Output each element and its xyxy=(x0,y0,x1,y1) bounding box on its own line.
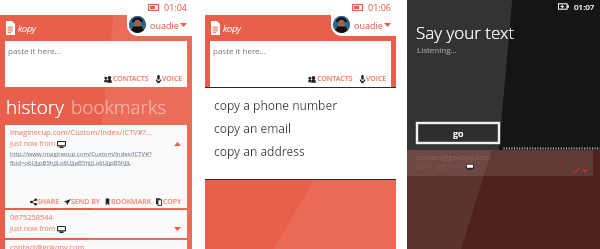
staticText: kopy xyxy=(223,22,241,34)
staticText: VOICE xyxy=(366,74,387,84)
button[interactable]: SHARE xyxy=(30,197,60,207)
staticText: ouadie xyxy=(150,19,179,31)
staticText: 01:04 xyxy=(164,1,187,13)
staticText: CONTACTS xyxy=(317,74,353,84)
staticText: VOICE xyxy=(162,74,183,84)
button[interactable]: ouadie xyxy=(331,13,396,36)
staticText: Listening... xyxy=(417,44,457,55)
staticText: CONTACTS xyxy=(113,74,149,84)
button[interactable]: 0675258544 xyxy=(5,210,187,238)
staticText: 01:06 xyxy=(368,1,391,13)
staticText: paste it here... xyxy=(8,45,61,56)
button[interactable]: imaginecup.com/Custom/Index/ICTV#?... xyxy=(5,125,187,208)
staticText: just now from xyxy=(10,139,56,149)
other: Account menu xyxy=(180,23,187,27)
staticText: 01:07 xyxy=(574,1,595,12)
button[interactable]: go xyxy=(417,123,499,143)
staticText: copy an address xyxy=(214,143,305,159)
button[interactable]: paste it here... xyxy=(5,41,187,87)
staticText: imaginecup.com/Custom/Index/ICTV#?... xyxy=(10,127,152,137)
button[interactable]: contact@gokopy.com xyxy=(407,150,593,176)
button[interactable]: CONTACTS xyxy=(307,73,354,85)
other: Account menu xyxy=(384,23,391,27)
staticText: paste it here... xyxy=(213,45,266,56)
staticText: COPY xyxy=(163,197,182,207)
button[interactable]: Expand xyxy=(172,225,183,233)
button[interactable]: Collapse xyxy=(172,140,183,148)
staticText: kopy xyxy=(18,22,36,34)
button[interactable]: copy an address xyxy=(214,143,396,159)
button[interactable]: bookmarks xyxy=(71,94,167,120)
staticText: Say your text xyxy=(416,21,515,44)
button[interactable]: COPY xyxy=(156,197,182,207)
staticText: just now from xyxy=(10,224,56,234)
staticText: contact@gokopy.com xyxy=(416,152,491,162)
button[interactable]: copy a phone number xyxy=(214,97,396,113)
button[interactable]: copy an email xyxy=(214,120,396,136)
button[interactable]: BOOKMARK xyxy=(104,197,152,207)
staticText: contact@gokopy.com xyxy=(10,242,85,249)
button[interactable]: SEND BY xyxy=(64,197,100,207)
staticText: copy a phone number xyxy=(214,97,338,113)
staticText: 0675258544 xyxy=(10,212,53,222)
staticText: ouadie xyxy=(354,19,383,31)
button[interactable]: history xyxy=(6,94,64,120)
staticText: SHARE xyxy=(37,197,60,207)
staticText: go xyxy=(453,127,464,139)
staticText: 2min ago from xyxy=(416,162,465,172)
staticText: copy an email xyxy=(214,120,292,136)
button[interactable]: CONTACTS xyxy=(103,73,150,85)
button[interactable]: paste it here... xyxy=(210,41,391,87)
button[interactable]: contact@gokopy.com xyxy=(5,240,187,249)
staticText: http://www.imaginecup.com/Custom/Index/I… xyxy=(10,150,183,167)
button[interactable]: VOICE xyxy=(359,73,388,85)
button[interactable]: ouadie xyxy=(127,13,192,36)
button[interactable]: VOICE xyxy=(155,73,184,85)
staticText: BOOKMARK xyxy=(111,197,152,207)
staticText: SEND BY xyxy=(71,197,100,207)
